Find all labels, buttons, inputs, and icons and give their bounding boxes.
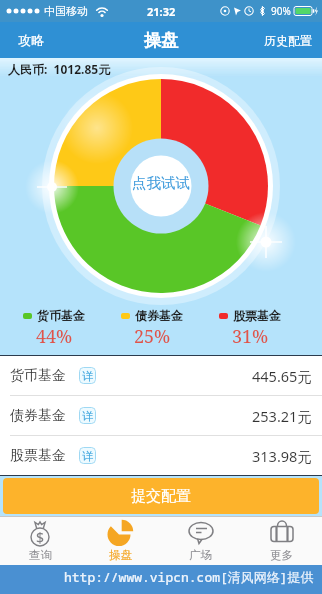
staticText: 操盘 bbox=[144, 30, 178, 51]
staticText: 445.65元 bbox=[252, 366, 312, 386]
button[interactable]: 操盘 bbox=[80, 517, 160, 565]
staticText: 中国移动 bbox=[44, 4, 88, 18]
staticText: 90% bbox=[271, 4, 291, 18]
staticText: 人民币: 1012.85元 bbox=[8, 61, 111, 77]
staticText: 历史配置 bbox=[264, 33, 312, 48]
button[interactable]: 货币基金 bbox=[0, 356, 322, 395]
staticText: 详 bbox=[82, 409, 93, 423]
staticText: 详 bbox=[82, 369, 93, 383]
button[interactable]: 详 bbox=[79, 367, 96, 384]
button[interactable]: 提交配置 bbox=[3, 478, 319, 514]
staticText: 股票基金 bbox=[233, 308, 281, 323]
staticText: 攻略 bbox=[18, 32, 44, 48]
staticText: 货币基金 bbox=[37, 308, 85, 323]
staticText: http://www.vipcn.com[清风网络]提供 bbox=[64, 568, 314, 586]
staticText: 21:32 bbox=[147, 4, 176, 19]
button[interactable]: 广场 bbox=[160, 517, 241, 565]
staticText: 查询 bbox=[29, 548, 52, 562]
staticText: 详 bbox=[82, 449, 93, 463]
button[interactable]: 详 bbox=[79, 447, 96, 464]
button[interactable] bbox=[55, 80, 267, 292]
button[interactable]: $ bbox=[0, 517, 80, 565]
staticText: 点我试试 bbox=[132, 174, 190, 192]
staticText: 货币基金 bbox=[10, 367, 66, 385]
button[interactable]: 历史配置 bbox=[258, 27, 318, 54]
button[interactable]: 债券基金 bbox=[0, 396, 322, 435]
button[interactable]: 更多 bbox=[241, 517, 322, 565]
button[interactable]: 攻略 bbox=[12, 26, 50, 54]
staticText: 股票基金 bbox=[10, 447, 66, 465]
staticText: 提交配置 bbox=[131, 487, 191, 506]
staticText: 253.21元 bbox=[252, 406, 312, 426]
staticText: 31% bbox=[232, 324, 269, 349]
staticText: 44% bbox=[36, 324, 73, 349]
button[interactable]: 股票基金 bbox=[0, 436, 322, 475]
staticText: 债券基金 bbox=[10, 407, 66, 425]
staticText: 广场 bbox=[189, 548, 212, 562]
staticText: $ bbox=[36, 528, 45, 547]
staticText: 操盘 bbox=[109, 548, 132, 562]
staticText: 25% bbox=[134, 324, 171, 349]
staticText: 313.98元 bbox=[252, 446, 312, 466]
staticText: 更多 bbox=[270, 548, 293, 562]
staticText: 债券基金 bbox=[135, 308, 183, 323]
button[interactable]: 详 bbox=[79, 407, 96, 424]
